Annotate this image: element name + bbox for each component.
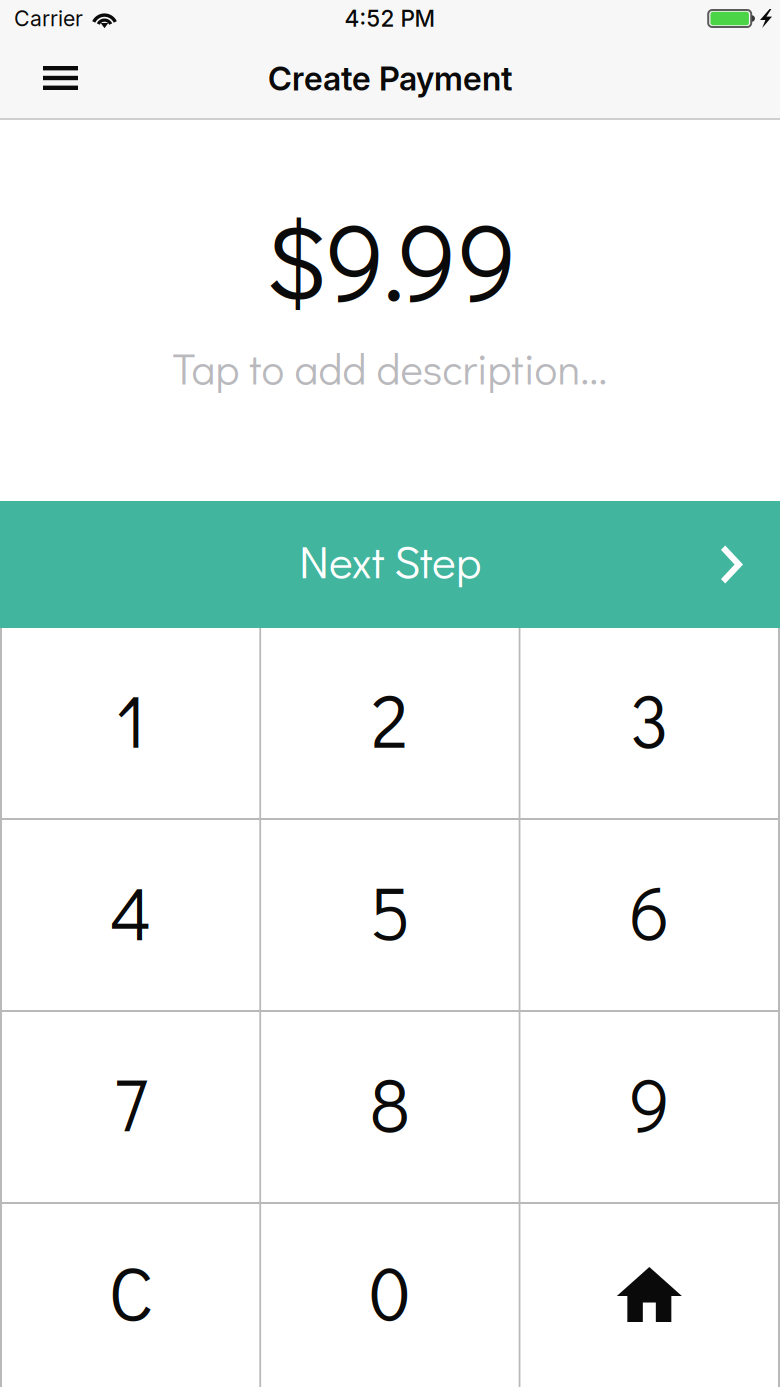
- staticText: 4: [110, 863, 152, 959]
- staticText: 8: [369, 1055, 410, 1151]
- staticText: 2: [371, 671, 408, 767]
- staticText: $9.99: [263, 189, 517, 329]
- staticText: Create Payment: [268, 59, 512, 98]
- staticText: 4:52 PM: [344, 5, 435, 32]
- button[interactable]: 8: [261, 1012, 519, 1202]
- button[interactable]: Menu: [0, 37, 121, 118]
- button[interactable]: 2: [261, 628, 519, 818]
- staticText: 5: [369, 863, 410, 959]
- button[interactable]: 1: [2, 628, 259, 818]
- button[interactable]: 9: [521, 1012, 778, 1202]
- staticText: 1: [116, 671, 146, 767]
- button[interactable]: 3: [521, 628, 778, 818]
- button[interactable]: C: [2, 1204, 259, 1387]
- button[interactable]: 6: [521, 820, 778, 1010]
- button[interactable]: Home: [521, 1204, 778, 1387]
- staticText: Next Step: [299, 531, 481, 590]
- button[interactable]: 7: [2, 1012, 259, 1202]
- button[interactable]: Tap to add description...: [172, 340, 607, 396]
- button[interactable]: 4: [2, 820, 259, 1010]
- button[interactable]: 5: [261, 820, 519, 1010]
- staticText: Tap to add description...: [172, 340, 607, 396]
- staticText: 3: [630, 671, 669, 767]
- staticText: C: [109, 1243, 153, 1339]
- staticText: 7: [114, 1055, 148, 1151]
- staticText: 0: [369, 1243, 410, 1339]
- button[interactable]: Next Step: [0, 501, 780, 628]
- button[interactable]: 0: [261, 1204, 519, 1387]
- staticText: Carrier: [14, 6, 83, 31]
- button[interactable]: $9.99: [263, 189, 517, 329]
- staticText: 6: [629, 863, 669, 959]
- staticText: 9: [629, 1055, 670, 1151]
